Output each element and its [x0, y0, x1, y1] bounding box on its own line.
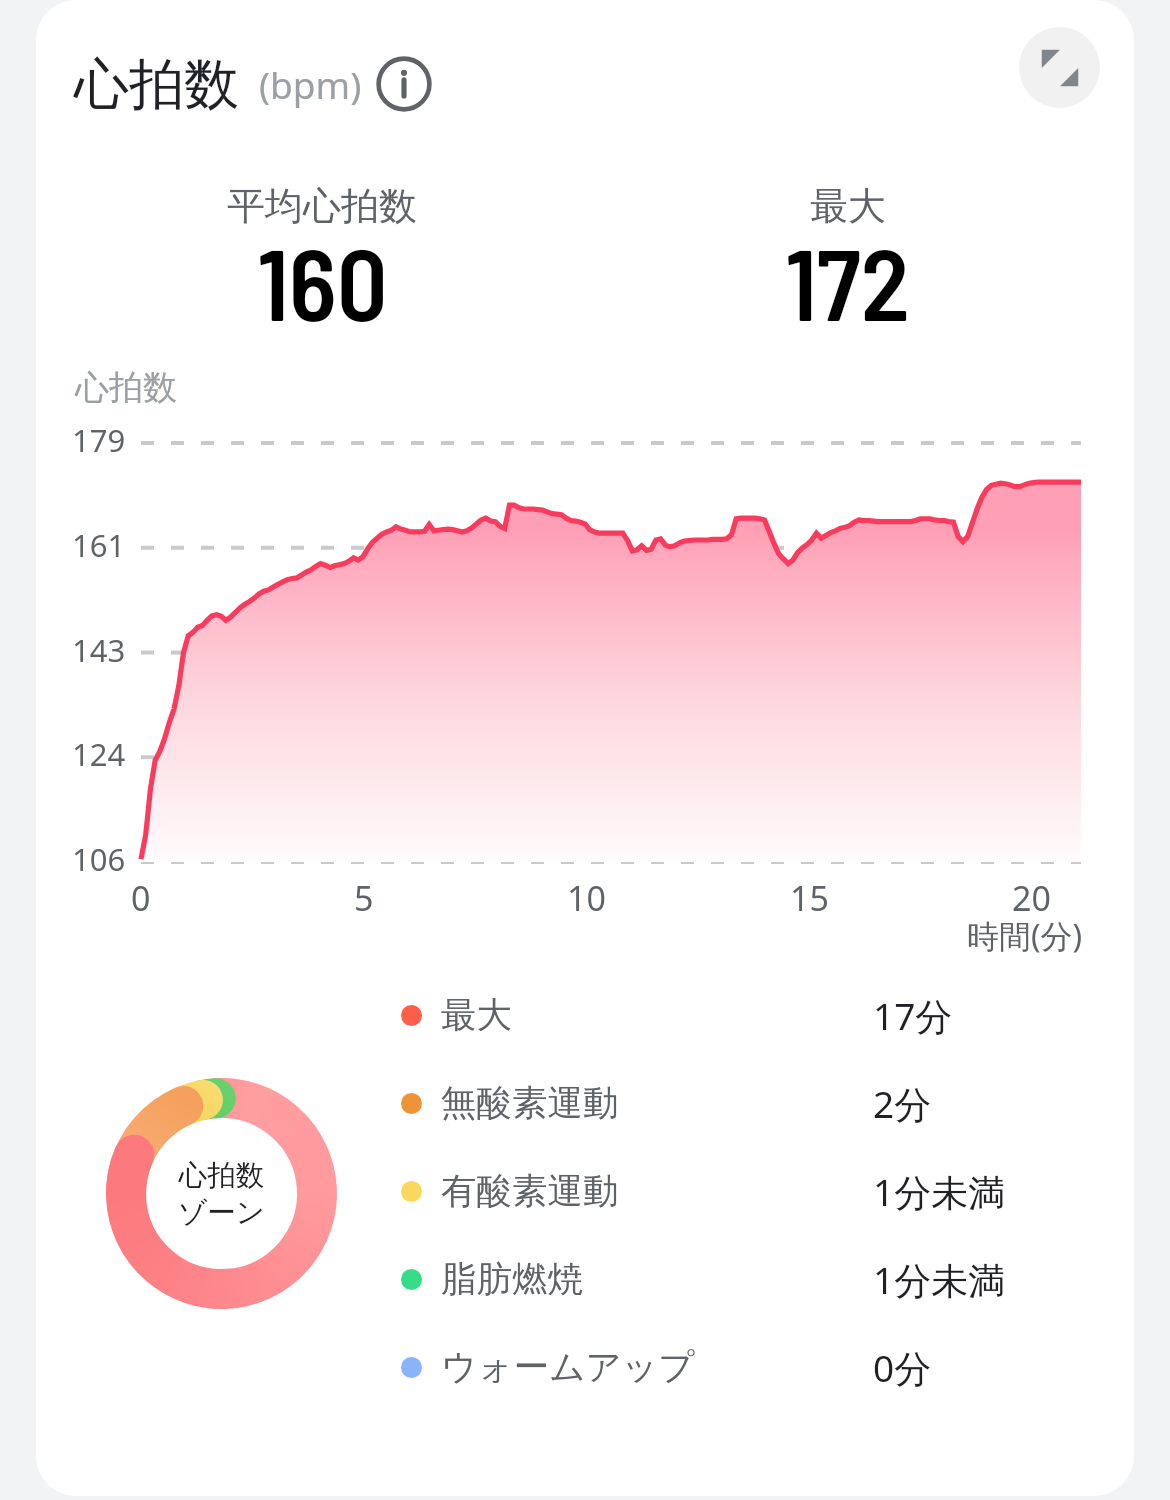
staticText: 平均心拍数	[227, 182, 417, 230]
staticText: 心拍数 ゾーン	[178, 1158, 265, 1230]
staticText: 時間(分)	[967, 914, 1083, 958]
staticText: 20	[1012, 875, 1051, 921]
button[interactable]: ウォームアップ	[390, 1325, 1114, 1409]
staticText: 106	[72, 838, 126, 880]
staticText: 1分未満	[873, 1166, 1006, 1217]
staticText: ウォームアップ	[441, 1345, 695, 1390]
staticText: 無酸素運動	[441, 1081, 619, 1126]
staticText: 15	[790, 875, 829, 921]
staticText: 179	[72, 419, 126, 461]
button[interactable]: 全画面表示	[1019, 27, 1100, 108]
staticText: 有酸素運動	[441, 1169, 619, 1214]
staticText: (bpm)	[259, 59, 362, 109]
button[interactable]: 脂肪燃焼	[390, 1237, 1114, 1321]
staticText: 1分未満	[873, 1254, 1006, 1305]
staticText: 2分	[873, 1078, 932, 1129]
button[interactable]: 最大	[390, 973, 1114, 1057]
staticText: 0	[131, 875, 151, 921]
button[interactable]: 有酸素運動	[390, 1149, 1114, 1233]
staticText: 172	[785, 221, 910, 341]
staticText: 124	[72, 733, 126, 775]
staticText: 脂肪燃焼	[441, 1257, 583, 1302]
staticText: 心拍数	[75, 366, 177, 409]
staticText: 5	[354, 875, 374, 921]
staticText: 最大	[810, 182, 886, 230]
staticText: 160	[257, 221, 388, 341]
staticText: 161	[72, 524, 126, 566]
staticText: 0分	[873, 1342, 932, 1393]
staticText: 心拍数	[74, 50, 239, 119]
staticText: 143	[72, 629, 126, 671]
button[interactable]: 無酸素運動	[390, 1061, 1114, 1145]
staticText: 17分	[873, 990, 953, 1041]
button[interactable]: 詳細情報	[373, 53, 435, 115]
staticText: 最大	[441, 993, 512, 1038]
staticText: 10	[567, 875, 606, 921]
